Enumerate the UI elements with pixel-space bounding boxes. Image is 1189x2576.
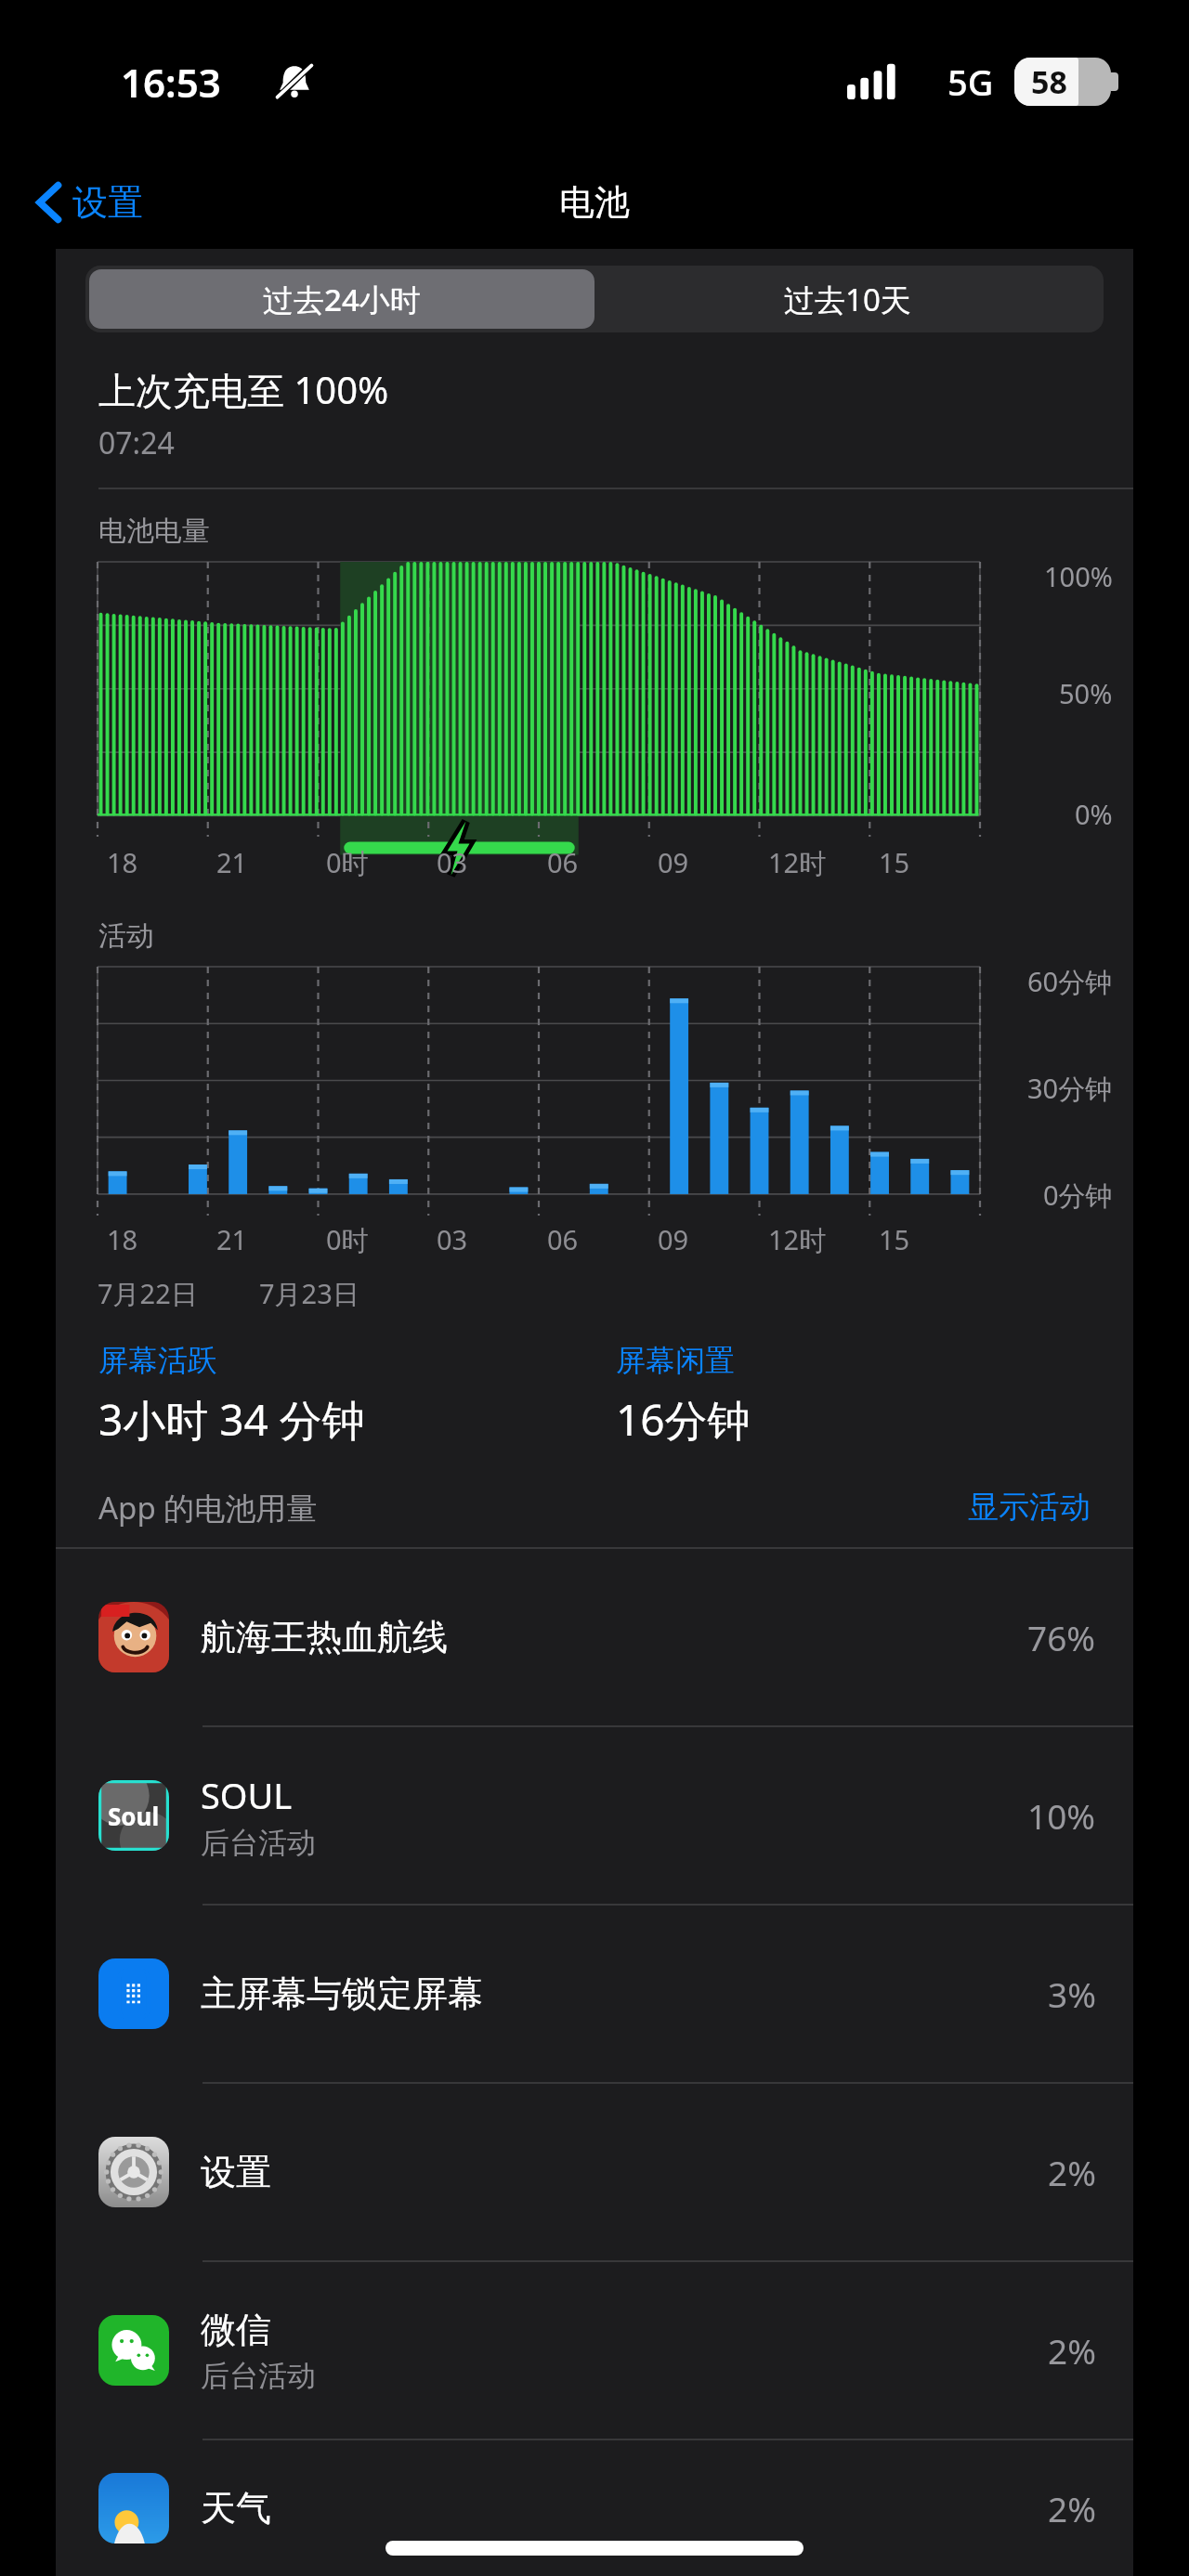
staticText: 10% [1027,1792,1096,1839]
staticText: 76% [1027,1614,1096,1660]
staticText: 60分钟 [1027,963,1113,1000]
button[interactable]: 航海王热血航线 [56,1549,1133,1727]
staticText: 显示活动 [968,1488,1091,1527]
button[interactable]: 过去24小时 [89,269,594,329]
staticText: 50% [1059,675,1113,711]
staticText: 过去24小时 [263,279,421,320]
staticText: 天气 [201,2486,271,2530]
staticText: 主屏幕与锁定屏幕 [201,1971,483,2016]
button[interactable]: 天气 [56,2440,1133,2576]
other: Home indicator [385,2541,804,2556]
button[interactable]: 微信 [56,2262,1133,2440]
button[interactable]: 显示活动 [962,1484,1096,1530]
staticText: 12时 [768,844,827,881]
staticText: 活动 [98,918,154,954]
staticText: 30分钟 [1027,1070,1113,1107]
staticText: 过去10天 [784,279,911,320]
staticText: 21 [216,844,248,880]
staticText: 18 [107,844,138,880]
staticText: 7月23日 [259,1275,359,1312]
staticText: 电池电量 [98,514,210,549]
staticText: 设置 [72,180,143,225]
staticText: 0时 [326,844,369,881]
staticText: SOUL [201,1771,293,1819]
staticText: 03 [437,1221,468,1257]
staticText: 屏幕闲置 [616,1342,735,1379]
staticText: 18 [107,1221,138,1257]
staticText: Soul [108,1800,160,1832]
staticText: 屏幕活跃 [98,1342,217,1379]
staticText: 21 [216,1221,248,1257]
staticText: 上次充电至 100% [98,364,389,415]
button[interactable]: 设置 [56,2084,1133,2262]
staticText: 09 [658,844,689,880]
staticText: 2% [1048,2327,1096,2374]
staticText: 航海王热血航线 [201,1615,448,1659]
staticText: 07:24 [98,423,175,463]
button[interactable]: Soul [56,1727,1133,1906]
staticText: 15 [879,844,910,880]
staticText: 0% [1075,796,1113,832]
staticText: 16分钟 [616,1390,751,1449]
staticText: 58 [1031,60,1067,103]
staticText: 3% [1048,1971,1096,2017]
staticText: 03 [437,844,468,880]
staticText: 后台活动 [201,2358,316,2394]
staticText: 15 [879,1221,910,1257]
staticText: 12时 [768,1221,827,1258]
staticText: 0时 [326,1221,369,1258]
staticText: 电池 [559,180,630,225]
staticText: 3小时 34 分钟 [98,1390,365,1449]
staticText: 09 [658,1221,689,1257]
staticText: 设置 [201,2150,271,2194]
staticText: App 的电池用量 [98,1487,962,1529]
staticText: 微信 [201,2308,271,2352]
staticText: 后台活动 [201,1825,316,1861]
staticText: 2% [1048,2149,1096,2195]
staticText: 7月22日 [98,1275,198,1312]
button[interactable]: 过去10天 [594,269,1100,329]
staticText: 5G [947,58,994,106]
button[interactable]: 设置 [26,173,152,232]
staticText: 100% [1044,558,1113,594]
staticText: 06 [547,1221,579,1257]
staticText: 0分钟 [1043,1177,1113,1214]
staticText: 16:53 [121,56,221,109]
button[interactable]: 主屏幕与锁定屏幕 [56,1906,1133,2084]
staticText: 2% [1048,2485,1096,2531]
staticText: 06 [547,844,579,880]
